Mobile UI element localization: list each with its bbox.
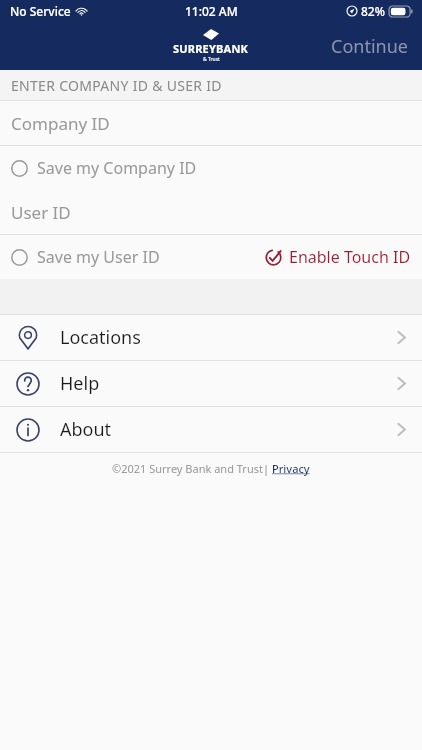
button[interactable]: User ID [0, 190, 422, 234]
button[interactable]: About [0, 407, 422, 452]
staticText: 82% [361, 3, 385, 19]
staticText: Save my Company ID [37, 157, 197, 179]
staticText: SURREYBANK [173, 41, 249, 56]
button[interactable]: Enable Touch ID [257, 238, 422, 276]
staticText: ENTER COMPANY ID & USER ID [11, 76, 222, 95]
staticText: About [60, 417, 112, 442]
staticText: Enable Touch ID [289, 246, 411, 268]
button[interactable]: Company ID [0, 101, 422, 145]
staticText: Continue [331, 34, 408, 59]
staticText: Company ID [11, 112, 110, 135]
staticText: User ID [11, 201, 71, 224]
staticText: 11:02 AM [185, 3, 238, 19]
staticText: No Service [10, 3, 71, 19]
staticText: Help [60, 371, 100, 396]
staticText: & Trust [203, 56, 220, 63]
staticText: ©2021 Surrey Bank and Trust| [112, 461, 269, 476]
staticText: Locations [60, 325, 141, 350]
button[interactable]: Privacy [272, 461, 310, 476]
button[interactable]: Continue [317, 26, 422, 67]
button[interactable]: Locations [0, 315, 422, 360]
staticText: Save my User ID [37, 246, 160, 268]
button[interactable]: Save my User ID [0, 238, 168, 276]
button[interactable]: Save my Company ID [0, 149, 205, 187]
staticText: Privacy [272, 461, 310, 476]
button[interactable]: Help [0, 361, 422, 406]
